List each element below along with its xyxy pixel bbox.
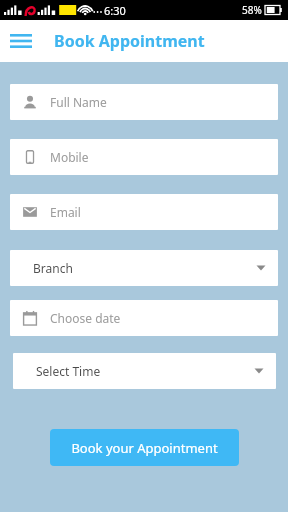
staticText: 6:30	[104, 3, 126, 18]
staticText: Full Name	[50, 94, 107, 110]
button[interactable]: Full Name	[10, 84, 278, 120]
staticText: Branch	[33, 260, 254, 276]
button[interactable]: Select Time	[13, 353, 276, 389]
button[interactable]: Choose date	[10, 300, 278, 336]
staticText: Choose date	[50, 310, 121, 326]
button[interactable]: Book your Appointment	[50, 429, 239, 466]
staticText: Mobile	[50, 149, 89, 165]
staticText: Email	[50, 204, 81, 220]
button[interactable]: Mobile	[10, 139, 278, 175]
button[interactable]: Email	[10, 194, 278, 230]
staticText: 58%	[242, 3, 262, 17]
button[interactable]: Open navigation menu	[6, 26, 36, 56]
staticText: Select Time	[36, 363, 252, 379]
button[interactable]: Branch	[10, 250, 278, 286]
staticText: Book Appointment	[54, 30, 205, 52]
staticText: Book your Appointment	[71, 439, 218, 457]
